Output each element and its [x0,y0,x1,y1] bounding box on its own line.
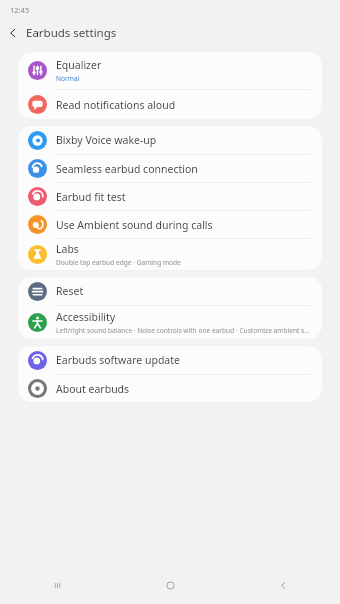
staticText: Seamless earbud connection [56,162,198,176]
staticText: Earbuds settings [26,25,117,41]
staticText: Normal [56,74,80,83]
button[interactable]: Accessibility [18,306,322,339]
staticText: Earbud fit test [56,190,126,204]
staticText: Equalizer [56,58,102,72]
staticText: Earbuds software update [56,353,180,367]
staticText: Left/right sound balance · Noise control… [56,326,310,335]
button[interactable]: Read notifications aloud [18,90,322,119]
button[interactable]: Labs [18,239,322,270]
button[interactable]: Back [0,20,26,46]
staticText: 12:45 [10,5,30,15]
button[interactable]: Home [114,567,227,604]
staticText: Double tap earbud edge · Gaming mode [56,258,181,267]
staticText: Reset [56,284,84,298]
staticText: About earbuds [56,382,130,396]
staticText: Use Ambient sound during calls [56,218,213,232]
button[interactable]: Earbud fit test [18,183,322,210]
button[interactable]: Seamless earbud connection [18,155,322,182]
button[interactable]: Recent apps [0,567,114,604]
button[interactable]: Use Ambient sound during calls [18,211,322,238]
staticText: Accessibility [56,310,116,324]
button[interactable]: About earbuds [18,375,322,402]
button[interactable]: Equalizer [18,52,322,89]
staticText: Read notifications aloud [56,98,176,112]
staticText: Labs [56,242,79,256]
staticText: Bixby Voice wake-up [56,133,157,147]
button[interactable]: Reset [18,277,322,305]
button[interactable]: Bixby Voice wake-up [18,126,322,154]
button[interactable]: Earbuds software update [18,346,322,374]
